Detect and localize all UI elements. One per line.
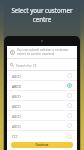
staticText: ABCD — [12, 124, 67, 128]
button[interactable]: ABCD — [7, 81, 77, 90]
staticText: ABCD — [12, 114, 67, 118]
button[interactable]: CCC — [7, 131, 77, 141]
staticText: CCC — [12, 134, 67, 138]
staticText: ABCD — [12, 94, 67, 98]
button[interactable]: ABCD — [7, 71, 77, 80]
other: Search — [10, 63, 14, 67]
staticText: Select your customer centre — [0, 6, 84, 24]
staticText: ABCD — [12, 74, 67, 78]
staticText: ABCD — [12, 84, 67, 88]
staticText: Continue — [35, 143, 49, 147]
button[interactable]: Search — [7, 59, 77, 70]
staticText: You can submit seletion a customer centr… — [17, 48, 75, 56]
button[interactable]: ABCD — [7, 91, 77, 100]
button[interactable]: ABCD — [7, 111, 77, 120]
button[interactable]: ABCD — [7, 121, 77, 130]
staticText: ABCD — [12, 104, 67, 108]
staticText: Search for CC — [16, 63, 37, 67]
button[interactable]: Continue — [11, 142, 73, 148]
button[interactable]: ABCD — [7, 101, 77, 110]
